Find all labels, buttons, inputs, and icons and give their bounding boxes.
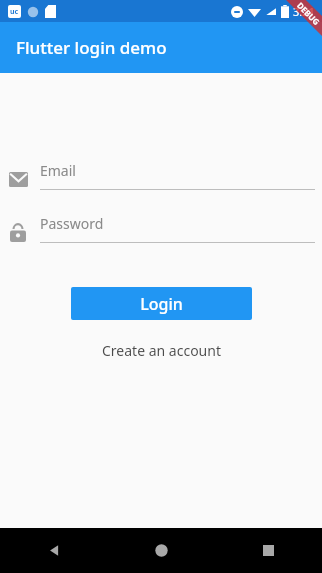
staticText: uc [10,7,19,17]
staticText: DEBUG [295,0,322,27]
staticText: Flutter login demo [16,36,167,59]
button[interactable]: Home [108,528,215,573]
staticText: Create an account [102,341,221,360]
staticText: Password [40,214,104,233]
button[interactable]: Back [0,528,108,573]
button[interactable]: Login [71,287,252,320]
button[interactable]: Create an account [96,338,227,363]
button[interactable]: Recents [215,528,322,573]
staticText: 3:21 [293,4,315,19]
staticText: Login [140,293,183,315]
staticText: Email [40,161,76,180]
